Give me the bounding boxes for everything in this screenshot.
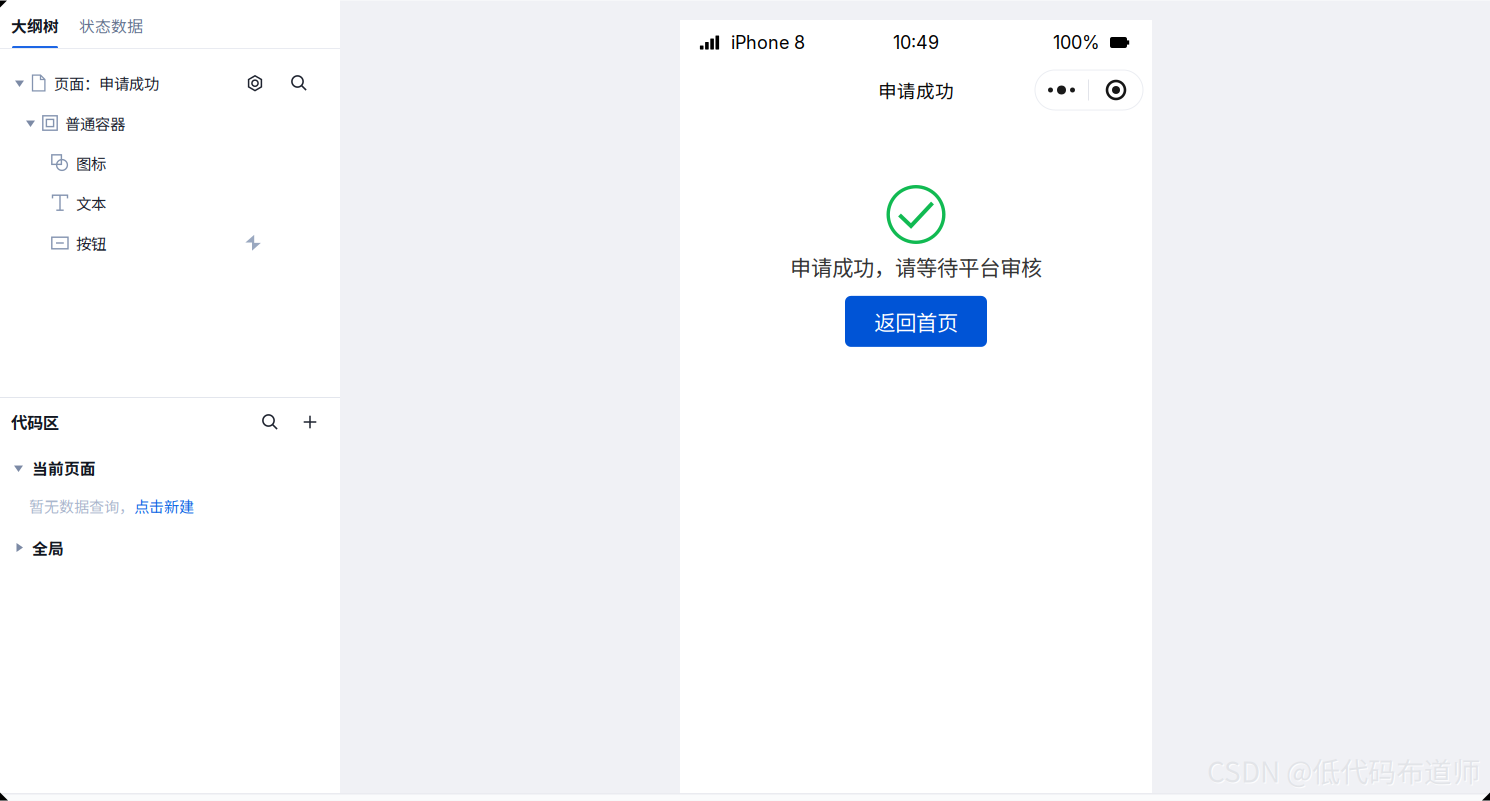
- button[interactable]: 返回首页: [845, 296, 987, 347]
- button[interactable]: Search outline: [284, 68, 314, 98]
- button[interactable]: 普通容器: [0, 103, 340, 143]
- staticText: 暂无数据查询，: [29, 495, 134, 517]
- staticText: 申请成功，请等待平台审核: [790, 251, 1042, 282]
- staticText: 代码区: [11, 410, 59, 434]
- button[interactable]: Close mini program: [1089, 70, 1143, 110]
- button[interactable]: 状态数据: [79, 0, 143, 49]
- staticText: 普通容器: [65, 112, 125, 134]
- staticText: CSDN @低代码布道师: [1207, 750, 1480, 790]
- staticText: 页面：申请成功: [54, 72, 159, 94]
- button[interactable]: 图标: [0, 143, 340, 183]
- staticText: 100%: [1053, 32, 1100, 53]
- staticText: 全局: [32, 537, 64, 559]
- staticText: 点击新建: [134, 495, 194, 517]
- button[interactable]: 当前页面: [0, 455, 340, 481]
- staticText: 图标: [76, 152, 106, 174]
- button[interactable]: Search data: [255, 407, 285, 437]
- staticText: iPhone 8: [731, 32, 805, 53]
- staticText: 文本: [76, 192, 106, 214]
- button[interactable]: More: [1035, 70, 1088, 110]
- button[interactable]: 文本: [0, 183, 340, 223]
- staticText: 10:49: [893, 32, 939, 53]
- staticText: 当前页面: [32, 457, 96, 479]
- button[interactable]: 按钮: [0, 223, 340, 263]
- button[interactable]: New data query: [295, 407, 325, 437]
- staticText: CSDN @低代码布道师: [1208, 751, 1481, 791]
- button[interactable]: 大纲树: [11, 0, 59, 49]
- button[interactable]: 全局: [0, 535, 340, 561]
- staticText: 申请成功: [878, 76, 954, 103]
- staticText: 返回首页: [874, 306, 958, 337]
- button[interactable]: 页面：申请成功: [0, 63, 340, 103]
- staticText: 按钮: [76, 232, 106, 254]
- staticText: 状态数据: [79, 14, 143, 37]
- button[interactable]: 点击新建: [134, 495, 194, 517]
- button[interactable]: Page settings: [240, 68, 270, 98]
- staticText: 大纲树: [11, 14, 59, 37]
